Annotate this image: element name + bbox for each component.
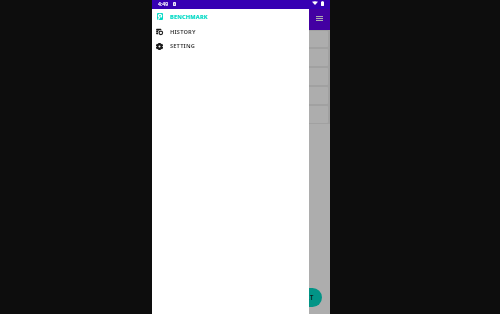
staticText: SETTING: [170, 42, 196, 50]
button[interactable]: HISTORY: [152, 24, 309, 39]
staticText: Benchmark: [160, 14, 204, 25]
button[interactable]: SETTING: [152, 39, 309, 53]
button[interactable]: Menu: [314, 13, 325, 24]
button[interactable]: [154, 49, 328, 66]
staticText: 4:49: [158, 1, 169, 8]
staticText: BENCHMARK: [170, 13, 208, 21]
staticText: START: [293, 293, 314, 302]
button[interactable]: START: [285, 288, 322, 307]
staticText: HISTORY: [170, 28, 196, 36]
button[interactable]: BENCHMARK: [152, 9, 309, 24]
button[interactable]: [154, 106, 328, 123]
button[interactable]: [154, 68, 328, 85]
button[interactable]: [154, 31, 328, 47]
button[interactable]: [154, 87, 328, 104]
